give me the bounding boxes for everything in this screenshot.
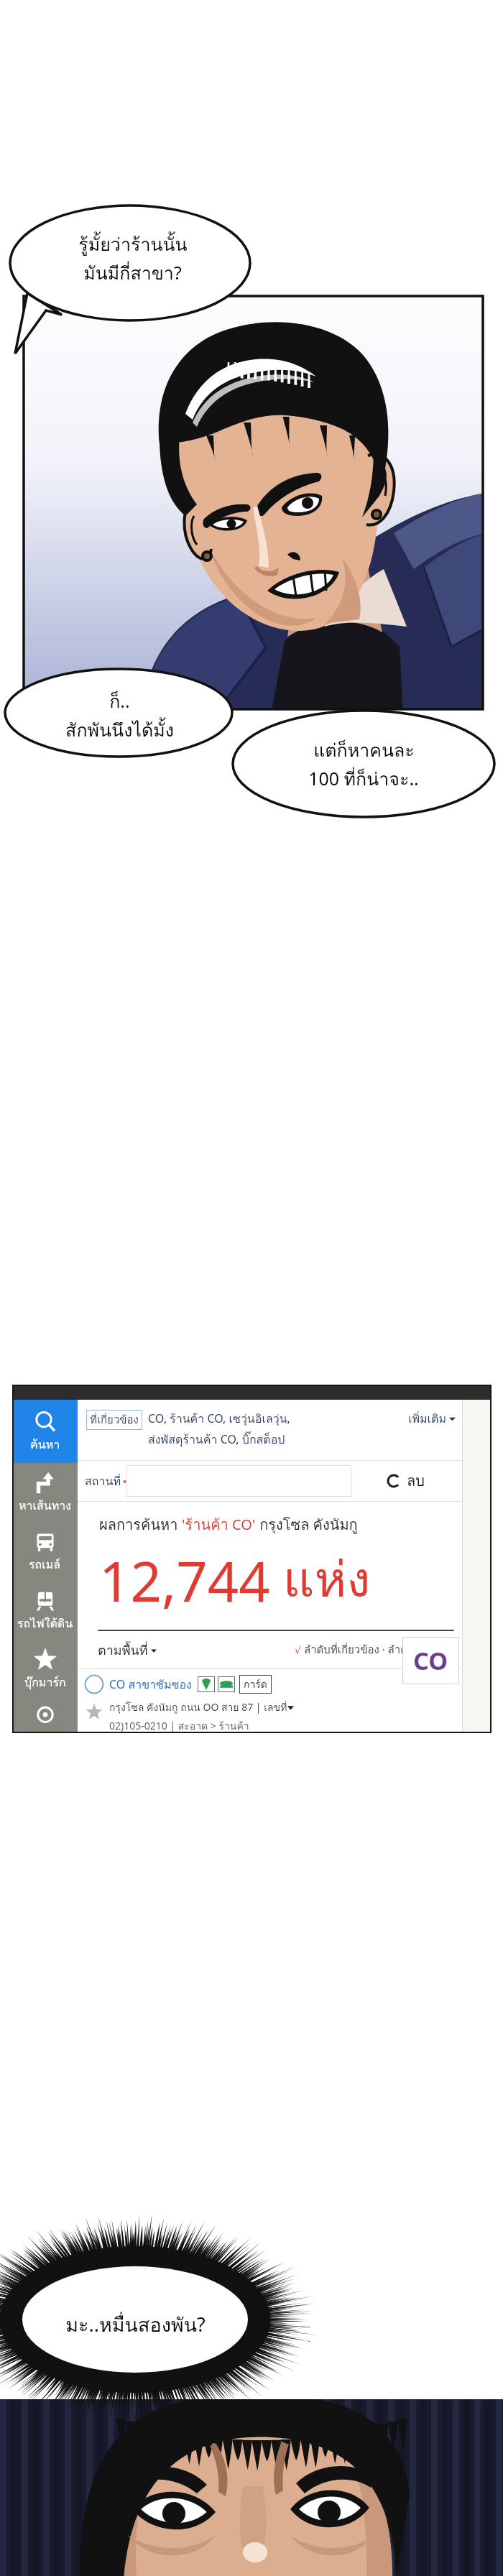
staticText: รถไฟใต้ดิน [17, 1615, 73, 1633]
staticText: ก็.. [109, 687, 130, 716]
staticText: ค้นหา [30, 1436, 60, 1454]
staticText: หาเส้นทาง [19, 1497, 72, 1515]
staticText: แต่ก็หาคนละ [313, 736, 415, 765]
staticText: แห่ง [270, 1541, 371, 1618]
staticText: บุ๊กมาร์ก [24, 1674, 66, 1691]
staticText: 100 ที่ก็น่าจะ.. [308, 765, 419, 793]
staticText: ลำดับที่เกี่ยวข้อง · ลำดับระยะทาง [304, 1641, 457, 1658]
staticText: 12,744 [99, 1543, 270, 1618]
button[interactable]: ตามพื้นที่ [98, 1640, 157, 1661]
staticText: มันมีกี่สาขา? [83, 259, 182, 287]
staticText: CO, ร้านค้า CO, เซวุ่นอิเลวุ่น, [148, 1410, 290, 1428]
staticText: ลบ [407, 1469, 425, 1492]
staticText: มะ..หมื่นสองพัน? [65, 2309, 206, 2340]
staticText: ผลการค้นหา [99, 1513, 182, 1536]
staticText: ที่เกี่ยวข้อง [90, 1411, 139, 1428]
staticText: สถานที่ [85, 1472, 121, 1490]
button[interactable]: ลบ [351, 1469, 459, 1492]
button[interactable]: หาเส้นทาง [12, 1463, 78, 1522]
staticText: การ์ด [244, 1676, 267, 1692]
staticText: CO สาขาซัมซอง [109, 1676, 192, 1694]
staticText: รู้มั้ยว่าร้านนั้น [78, 230, 188, 259]
staticText: CO [413, 1644, 448, 1677]
staticText: กรุงโซล คังนัมกู ถนน OO สาย 87 | เลขที่ [109, 1699, 287, 1715]
staticText: √ [295, 1643, 304, 1657]
button[interactable]: การ์ด [244, 1676, 267, 1692]
staticText: ส่งพัสดุร้านค้า CO, บิ๊กสต็อป [148, 1431, 285, 1449]
button[interactable]: More [12, 1699, 78, 1733]
button[interactable]: รถไฟใต้ดิน [12, 1581, 78, 1640]
staticText: กรุงโซล คังนัมกู [256, 1513, 358, 1536]
staticText: เพิ่มเติม [408, 1410, 446, 1428]
staticText: ตามพื้นที่ [98, 1640, 148, 1661]
button[interactable]: รถเมล์ [12, 1522, 78, 1581]
staticText: สักพันนึงได้มั้ง [65, 716, 174, 744]
staticText: รถเมล์ [29, 1556, 61, 1574]
staticText: 02)105-0210 | สะอาด > ร้านค้า [109, 1718, 249, 1733]
button[interactable]: บุ๊กมาร์ก [12, 1640, 78, 1699]
button[interactable]: สถานที่ [85, 1472, 126, 1490]
staticText: 'ร้านค้า CO' [182, 1513, 256, 1536]
button[interactable]: ที่เกี่ยวข้อง [90, 1411, 139, 1428]
button[interactable]: ค้นหา [12, 1400, 78, 1463]
button[interactable]: เพิ่มเติม [408, 1410, 456, 1428]
